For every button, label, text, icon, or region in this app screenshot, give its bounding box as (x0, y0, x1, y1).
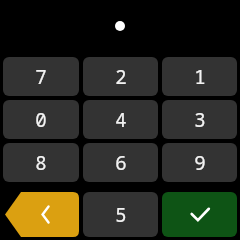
button[interactable]: 8 (3, 143, 79, 182)
button[interactable]: 4 (83, 100, 158, 139)
button[interactable]: 9 (162, 143, 237, 182)
button[interactable]: 0 (3, 100, 79, 139)
staticText: 4 (115, 107, 127, 133)
button[interactable]: 2 (83, 57, 158, 96)
button[interactable]: 7 (3, 57, 79, 96)
button[interactable]: 1 (162, 57, 237, 96)
button[interactable]: Delete (3, 192, 79, 237)
button[interactable]: 5 (83, 192, 158, 237)
staticText: 5 (115, 202, 127, 228)
staticText: 1 (194, 64, 206, 90)
staticText: 3 (194, 107, 206, 133)
staticText: 9 (194, 150, 206, 176)
button[interactable]: 6 (83, 143, 158, 182)
staticText: 8 (35, 150, 47, 176)
staticText: 6 (115, 150, 127, 176)
staticText: 0 (35, 107, 47, 133)
staticText: 7 (35, 64, 47, 90)
staticText: 2 (115, 64, 127, 90)
button[interactable]: Confirm (162, 192, 237, 237)
button[interactable]: 3 (162, 100, 237, 139)
